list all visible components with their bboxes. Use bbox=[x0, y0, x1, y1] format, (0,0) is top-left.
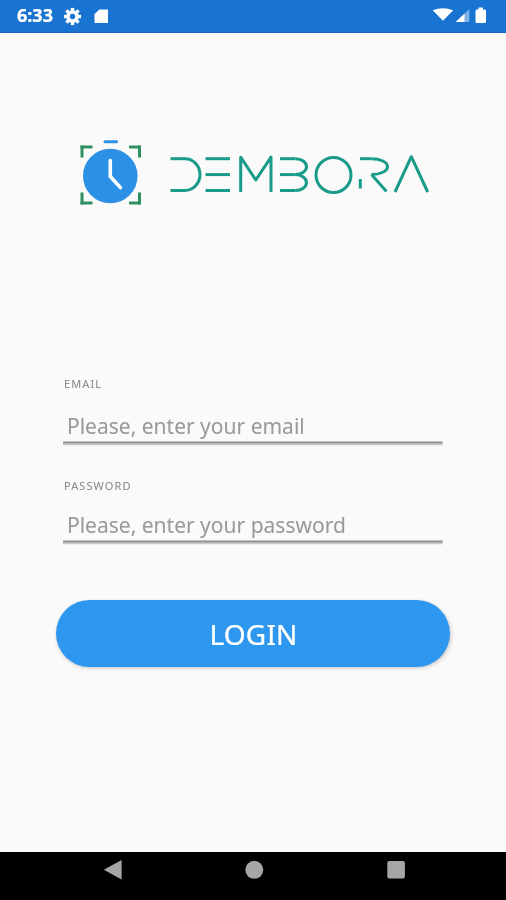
staticText: EMAIL bbox=[64, 376, 103, 391]
staticText: Please, enter your email bbox=[67, 412, 305, 441]
staticText: Please, enter your password bbox=[67, 511, 346, 540]
button[interactable]: Please, enter your email bbox=[56, 398, 450, 448]
button[interactable] bbox=[230, 852, 278, 900]
button[interactable] bbox=[372, 852, 420, 900]
staticText: 6:33 bbox=[17, 3, 53, 28]
button[interactable]: Please, enter your password bbox=[56, 497, 450, 547]
button[interactable] bbox=[88, 852, 136, 900]
staticText: LOGIN bbox=[209, 615, 298, 653]
button[interactable]: LOGIN bbox=[56, 600, 450, 667]
staticText: PASSWORD bbox=[64, 478, 132, 493]
